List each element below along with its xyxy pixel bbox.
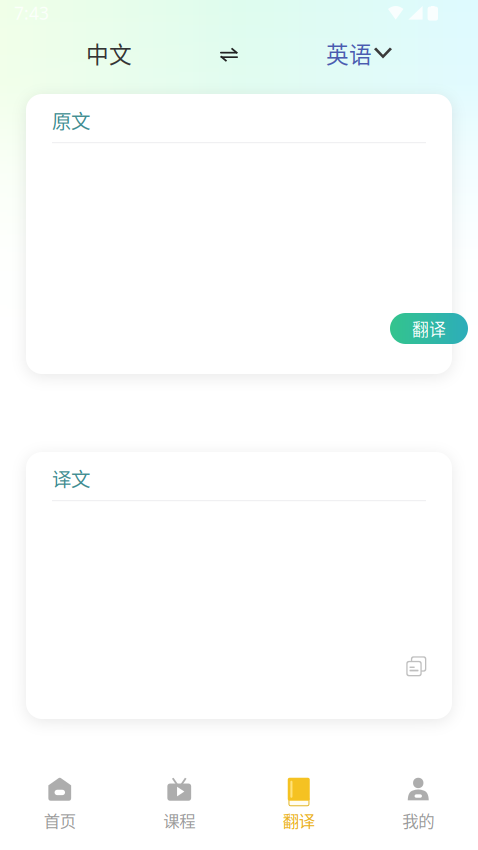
staticText: 原文 bbox=[52, 106, 90, 134]
staticText: 课程 bbox=[163, 808, 195, 832]
button[interactable]: 我的 bbox=[358, 768, 478, 840]
button[interactable]: 课程 bbox=[119, 768, 239, 840]
button[interactable]: 翻译 bbox=[239, 768, 358, 840]
staticText: 我的 bbox=[402, 808, 434, 832]
button[interactable]: 首页 bbox=[0, 768, 119, 840]
staticText: 翻译 bbox=[283, 808, 315, 832]
staticText: 英语 bbox=[326, 37, 372, 69]
button[interactable]: 翻译 bbox=[390, 313, 468, 344]
button[interactable]: 中文 bbox=[86, 37, 132, 69]
staticText: 7:43 bbox=[14, 1, 49, 24]
button[interactable]: 英语 bbox=[326, 37, 392, 69]
button[interactable]: Copy translation bbox=[404, 654, 424, 674]
staticText: 译文 bbox=[52, 464, 90, 492]
staticText: 中文 bbox=[86, 37, 132, 69]
button[interactable]: Swap languages bbox=[220, 45, 238, 60]
staticText: 翻译 bbox=[412, 316, 446, 341]
staticText: 首页 bbox=[44, 808, 76, 832]
